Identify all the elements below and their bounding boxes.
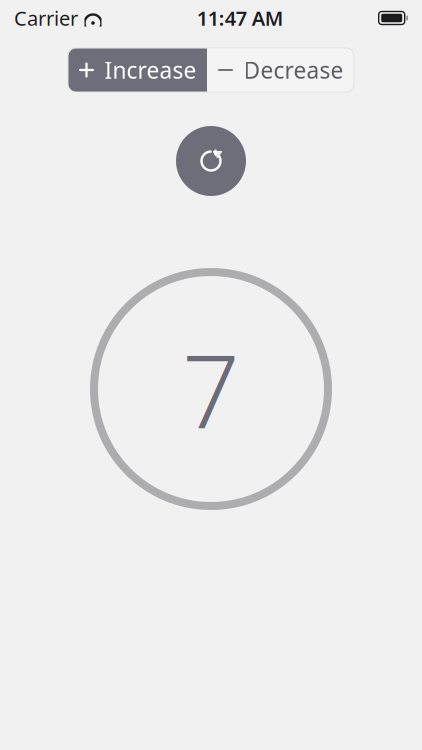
button[interactable]: Increase <box>68 48 207 92</box>
staticText: Decrease <box>243 55 343 85</box>
staticText: Carrier <box>14 5 78 31</box>
button[interactable]: Decrease <box>207 48 354 92</box>
staticText: Increase <box>104 55 196 85</box>
button[interactable]: Reset <box>176 126 246 196</box>
staticText: 7 <box>182 322 240 456</box>
staticText: 11:47 AM <box>197 5 284 31</box>
